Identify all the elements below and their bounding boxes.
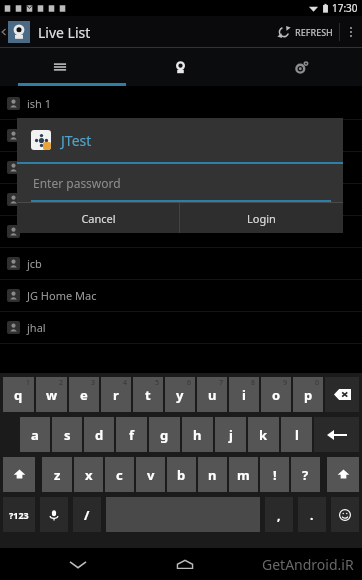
button[interactable]: n — [198, 457, 227, 492]
staticText: g — [160, 426, 169, 444]
button[interactable]: j — [215, 417, 246, 452]
button[interactable]: r — [101, 377, 131, 412]
button[interactable]: ? — [291, 457, 320, 492]
staticText: 7 — [219, 378, 224, 388]
button[interactable]: s — [52, 417, 82, 452]
button[interactable]: Login — [180, 203, 343, 233]
button[interactable]: . — [298, 497, 326, 532]
staticText: s — [64, 426, 71, 444]
staticText: w — [46, 386, 58, 404]
button[interactable]: z — [42, 457, 72, 492]
staticText: r — [113, 386, 119, 404]
button[interactable]: Back — [48, 548, 108, 580]
button[interactable] — [0, 184, 362, 215]
staticText: i — [242, 386, 246, 404]
button[interactable]: Cancel — [17, 203, 179, 233]
button[interactable] — [0, 216, 362, 247]
staticText: 2 — [59, 378, 64, 388]
staticText: , — [277, 507, 281, 523]
button[interactable]: u — [197, 377, 227, 412]
button[interactable]: jhal — [0, 312, 362, 343]
staticText: . — [310, 507, 314, 523]
staticText: k — [259, 426, 268, 444]
staticText: c — [116, 466, 123, 484]
button[interactable]: l — [281, 417, 312, 452]
button[interactable]: More options — [340, 16, 362, 48]
button[interactable]: Backspace — [325, 377, 359, 412]
staticText: q — [14, 386, 23, 404]
staticText: / — [84, 506, 90, 524]
button[interactable]: Enter — [314, 417, 359, 452]
button[interactable]: q — [3, 377, 34, 412]
button[interactable]: m — [229, 457, 258, 492]
button[interactable]: Voice input — [40, 497, 68, 532]
staticText: n — [208, 466, 217, 484]
staticText: 8 — [251, 378, 256, 388]
button[interactable]: List — [0, 48, 120, 86]
button[interactable] — [0, 120, 362, 151]
button[interactable]: c — [105, 457, 134, 492]
staticText: a — [31, 426, 39, 444]
staticText: Cancel — [81, 211, 116, 226]
button[interactable]: t — [133, 377, 163, 412]
staticText: REFRESH — [295, 26, 333, 38]
button[interactable]: b — [167, 457, 196, 492]
button[interactable] — [0, 152, 362, 183]
staticText: d — [95, 426, 104, 444]
button[interactable]: i — [229, 377, 259, 412]
button[interactable]: Emoji — [331, 497, 359, 532]
button[interactable]: Shift — [3, 457, 35, 492]
staticText: 1 — [26, 378, 31, 388]
staticText: z — [54, 466, 61, 484]
staticText: JG Home Mac — [27, 288, 97, 303]
button[interactable]: h — [182, 417, 213, 452]
staticText: u — [208, 386, 217, 404]
button[interactable]: JG Home Mac — [0, 280, 362, 311]
staticText: ish 1 — [27, 96, 52, 111]
staticText: v — [147, 466, 155, 484]
button[interactable]: REFRESH — [271, 16, 339, 48]
button[interactable]: / — [73, 497, 101, 532]
button[interactable]: , — [265, 497, 293, 532]
staticText: l — [295, 426, 299, 444]
staticText: jcb — [27, 256, 42, 271]
button[interactable]: ?123 — [3, 497, 35, 532]
button[interactable]: p — [293, 377, 323, 412]
staticText: f — [129, 426, 135, 444]
staticText: b — [177, 466, 186, 484]
button[interactable]: Settings — [241, 48, 362, 86]
button[interactable]: x — [74, 457, 103, 492]
staticText: 5 — [155, 378, 160, 388]
staticText: JTest — [61, 131, 92, 150]
button[interactable]: d — [84, 417, 114, 452]
staticText: Login — [247, 211, 276, 226]
button[interactable]: Cameras — [120, 48, 241, 86]
staticText: Enter password — [33, 175, 121, 191]
staticText: 4 — [123, 378, 128, 388]
button[interactable]: Home — [155, 548, 215, 580]
staticText: j — [229, 426, 233, 444]
staticText: ? — [302, 466, 309, 484]
staticText: m — [237, 466, 250, 484]
staticText: t — [145, 386, 151, 404]
button[interactable]: ! — [260, 457, 289, 492]
button[interactable]: o — [261, 377, 291, 412]
button[interactable]: ish 1 — [0, 88, 362, 119]
button[interactable]: w — [36, 377, 67, 412]
button[interactable]: k — [248, 417, 279, 452]
staticText: e — [80, 386, 88, 404]
button[interactable]: v — [136, 457, 165, 492]
button[interactable]: y — [165, 377, 195, 412]
staticText: x — [85, 466, 93, 484]
button[interactable]: a — [20, 417, 50, 452]
button[interactable]: e — [69, 377, 99, 412]
button[interactable]: Up — [0, 16, 30, 48]
button[interactable]: Enter password — [17, 164, 343, 202]
button[interactable]: jcb — [0, 248, 362, 279]
button[interactable]: g — [149, 417, 180, 452]
staticText: y — [176, 386, 184, 404]
button[interactable]: f — [116, 417, 147, 452]
staticText: h — [193, 426, 202, 444]
button[interactable]: Shift — [327, 457, 359, 492]
